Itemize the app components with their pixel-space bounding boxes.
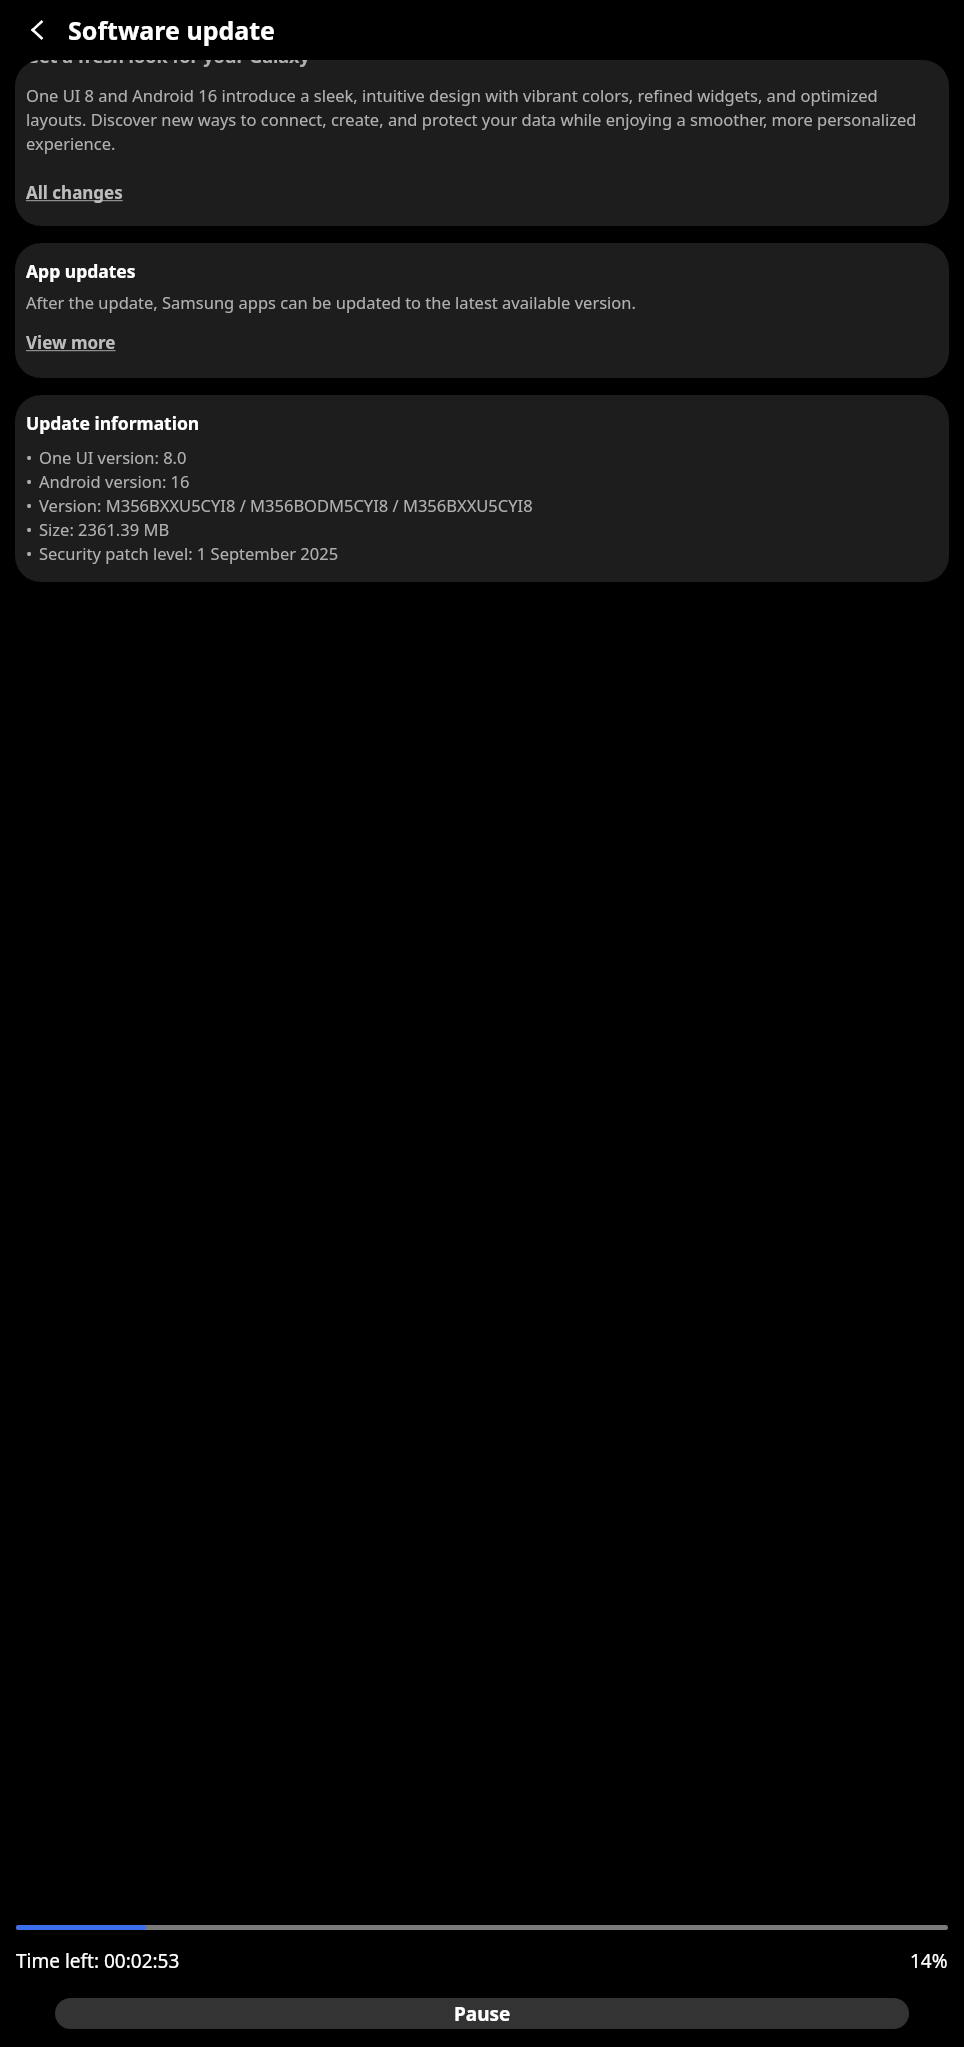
staticText: •	[26, 518, 33, 540]
staticText: One UI 8 and Android 16 introduce a slee…	[26, 84, 929, 155]
staticText: •	[26, 542, 33, 564]
staticText: View more	[26, 331, 116, 354]
button[interactable]: All changes	[26, 181, 123, 204]
button[interactable]: App updates	[15, 243, 949, 378]
button[interactable]: Back	[16, 8, 60, 52]
staticText: App updates	[26, 259, 136, 283]
staticText: •	[26, 494, 33, 516]
staticText: One UI version: 8.0	[39, 446, 187, 468]
staticText: •	[26, 446, 33, 468]
button[interactable]: Update information	[15, 395, 949, 582]
staticText: 14%	[910, 1948, 948, 1974]
staticText: Version: M356BXXU5CYI8 / M356BODM5CYI8 /…	[39, 494, 533, 516]
staticText: After the update, Samsung apps can be up…	[26, 291, 636, 313]
staticText: Update information	[26, 411, 200, 435]
button[interactable]: Get a fresh look for your Galaxy	[15, 60, 949, 226]
staticText: Get a fresh look for your Galaxy	[26, 60, 310, 69]
staticText: Software update	[68, 13, 276, 47]
staticText: •	[26, 470, 33, 492]
staticText: Security patch level: 1 September 2025	[39, 542, 339, 564]
staticText: All changes	[26, 181, 123, 204]
staticText: Pause	[454, 2001, 511, 2027]
button[interactable]: Pause	[55, 1998, 909, 2029]
staticText: Time left: 00:02:53	[16, 1948, 180, 1974]
button[interactable]: View more	[26, 331, 116, 354]
staticText: Size: 2361.39 MB	[39, 518, 170, 540]
staticText: Android version: 16	[39, 470, 190, 492]
